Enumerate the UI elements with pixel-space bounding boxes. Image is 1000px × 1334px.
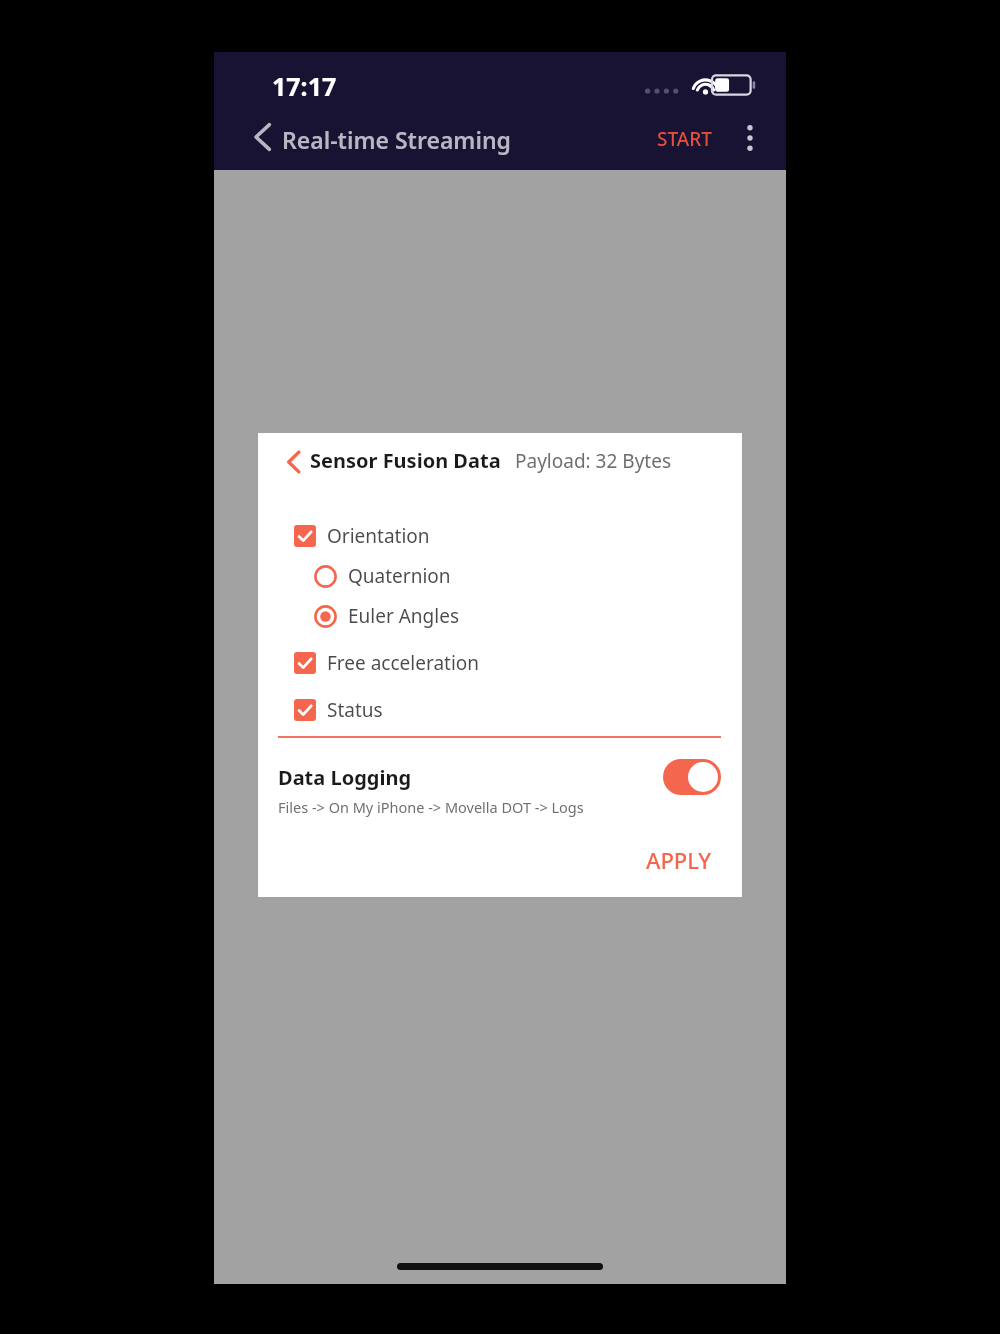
staticText: 17:17	[272, 69, 337, 103]
button[interactable]: START	[657, 126, 712, 152]
staticText: Quaternion	[348, 563, 451, 589]
staticText: Free acceleration	[327, 650, 480, 676]
button[interactable]: Data Logging toggle	[663, 759, 721, 795]
button[interactable]: Quaternion	[314, 559, 451, 593]
button[interactable]: Free acceleration	[294, 646, 480, 680]
staticText: Status	[327, 697, 383, 723]
staticText: Payload: 32 Bytes	[515, 448, 672, 474]
staticText: Files -> On My iPhone -> Movella DOT -> …	[278, 797, 584, 817]
staticText: Euler Angles	[348, 603, 459, 629]
staticText: START	[657, 126, 712, 152]
staticText: Real-time Streaming	[282, 124, 512, 155]
staticText: Orientation	[327, 523, 430, 549]
button[interactable]: Orientation	[294, 519, 430, 553]
staticText: Data Logging	[278, 764, 412, 791]
button[interactable]: APPLY	[646, 845, 712, 875]
staticText: APPLY	[646, 845, 712, 875]
staticText: Sensor Fusion Data	[310, 447, 501, 474]
button[interactable]: More options	[728, 116, 772, 160]
button[interactable]: Back	[240, 114, 286, 160]
button[interactable]: Status	[294, 693, 383, 727]
button[interactable]: Back	[274, 441, 314, 483]
button[interactable]: Euler Angles	[314, 599, 459, 633]
